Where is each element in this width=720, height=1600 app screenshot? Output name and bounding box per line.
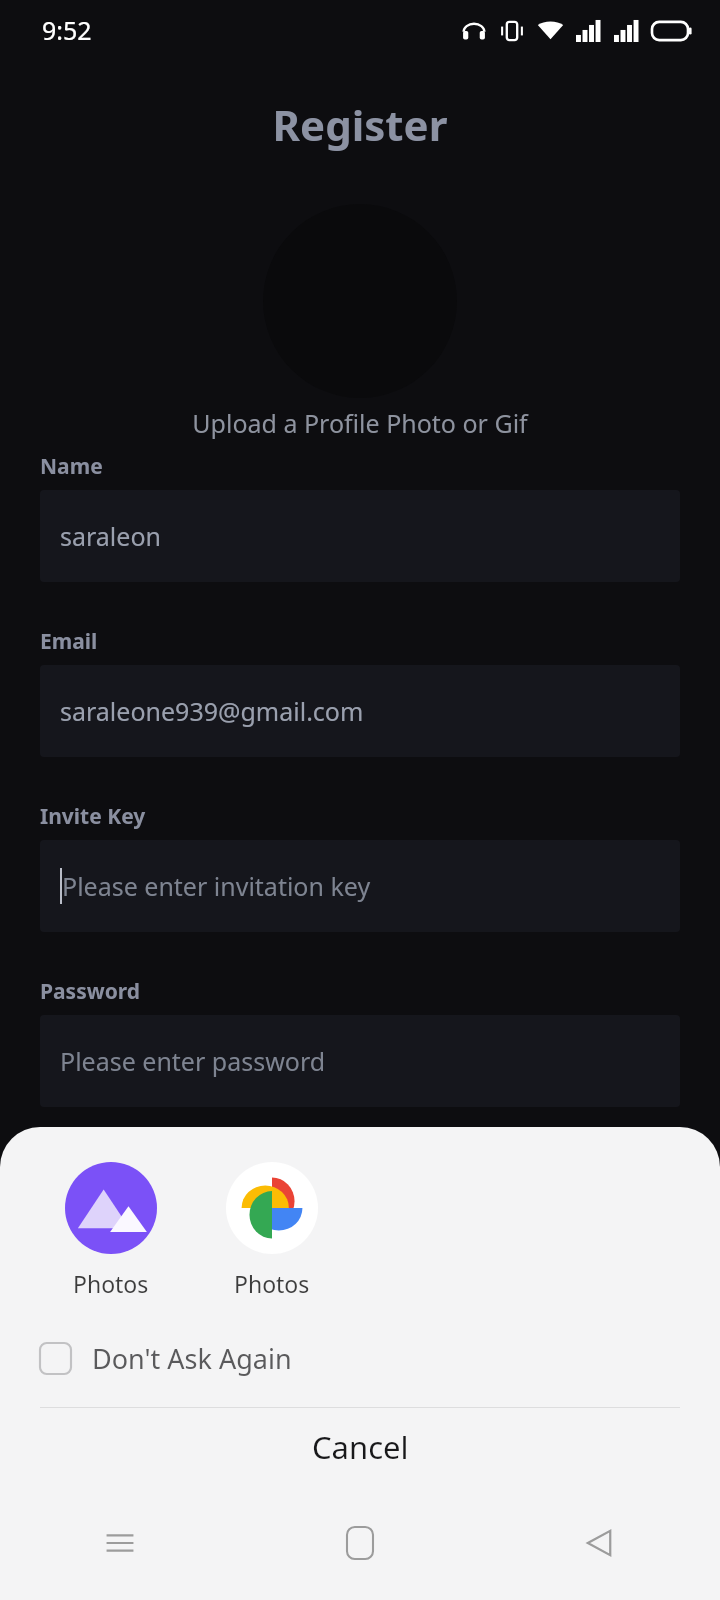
staticText: Please enter invitation key <box>62 869 371 903</box>
staticText: 9:52 <box>42 13 92 47</box>
staticText: Cancel <box>312 1426 409 1468</box>
button[interactable]: Cancel <box>0 1408 720 1486</box>
staticText: saraleone939@gmail.com <box>60 694 364 728</box>
staticText: Password <box>40 977 141 1006</box>
button[interactable]: saraleone939@gmail.com <box>40 665 680 757</box>
button[interactable]: saraleon <box>40 490 680 582</box>
staticText: Register <box>0 96 720 153</box>
button[interactable]: Recent apps <box>0 1486 240 1600</box>
button[interactable]: Please enter invitation key <box>40 840 680 932</box>
staticText: Upload a Profile Photo or Gif <box>0 406 720 440</box>
staticText: saraleon <box>60 519 161 553</box>
button[interactable]: Please enter password <box>40 1015 680 1107</box>
button[interactable]: Photos <box>217 1158 327 1303</box>
staticText: Photos <box>234 1268 310 1299</box>
button[interactable]: Back <box>480 1486 720 1600</box>
staticText: Email <box>40 627 98 656</box>
staticText: Invite Key <box>40 802 146 831</box>
button[interactable]: Home <box>240 1486 480 1600</box>
staticText: Photos <box>73 1268 149 1299</box>
button[interactable]: Don't Ask Again <box>40 1334 316 1383</box>
staticText: Don't Ask Again <box>92 1340 292 1377</box>
button[interactable]: Photos <box>56 1158 166 1303</box>
staticText: Name <box>40 452 103 481</box>
staticText: Please enter password <box>60 1044 326 1078</box>
